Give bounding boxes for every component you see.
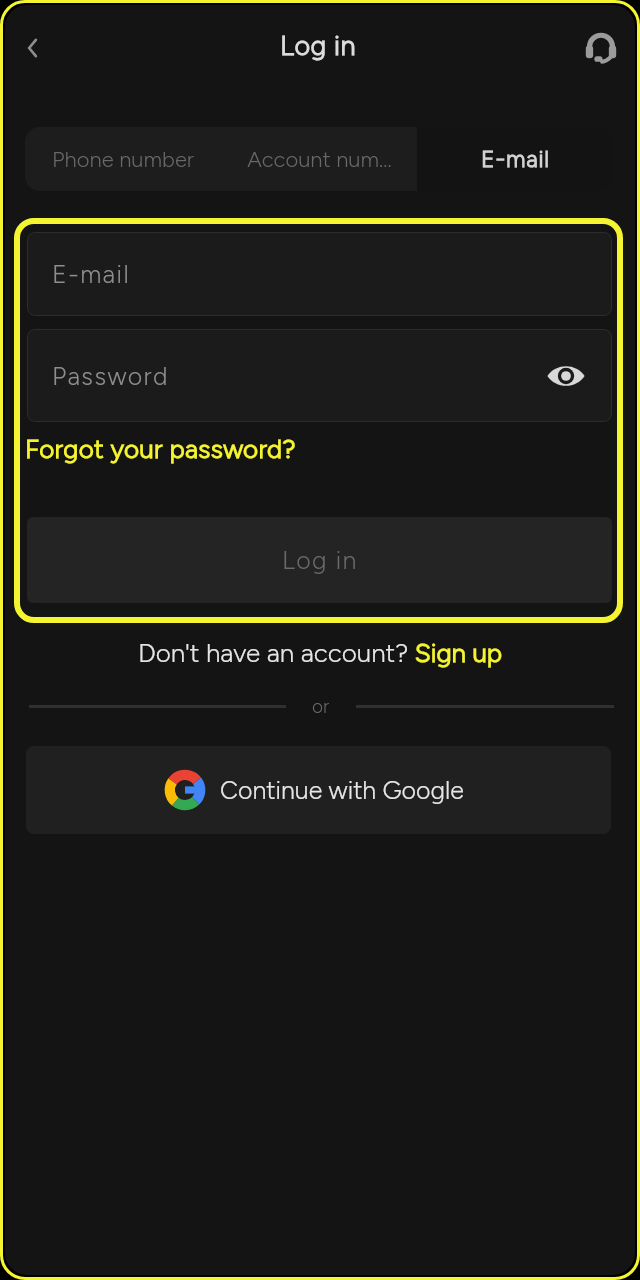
button[interactable]: Back — [9, 24, 57, 72]
button[interactable]: Password — [27, 329, 612, 422]
button[interactable]: Continue with Google — [26, 746, 611, 834]
staticText: Phone number — [52, 146, 194, 172]
staticText: Password — [52, 361, 169, 391]
button[interactable]: E-mail — [417, 127, 613, 191]
staticText: E-mail — [481, 145, 550, 173]
staticText: or — [312, 695, 330, 718]
button[interactable]: Help — [577, 24, 625, 72]
staticText: E-mail — [52, 259, 131, 289]
button[interactable]: Account num... — [221, 127, 417, 191]
staticText: Continue with Google — [220, 775, 464, 805]
button[interactable]: Phone number — [25, 127, 221, 191]
button[interactable]: E-mail — [27, 232, 612, 316]
staticText: Account num... — [247, 146, 392, 172]
button[interactable]: Show password — [544, 354, 588, 398]
staticText: Log in — [5, 29, 633, 61]
staticText: Log in — [282, 545, 358, 575]
button[interactable]: Don't have an account? Sign up — [5, 637, 635, 668]
button[interactable]: Log in — [27, 517, 612, 603]
button[interactable]: Forgot your password? — [25, 433, 296, 464]
